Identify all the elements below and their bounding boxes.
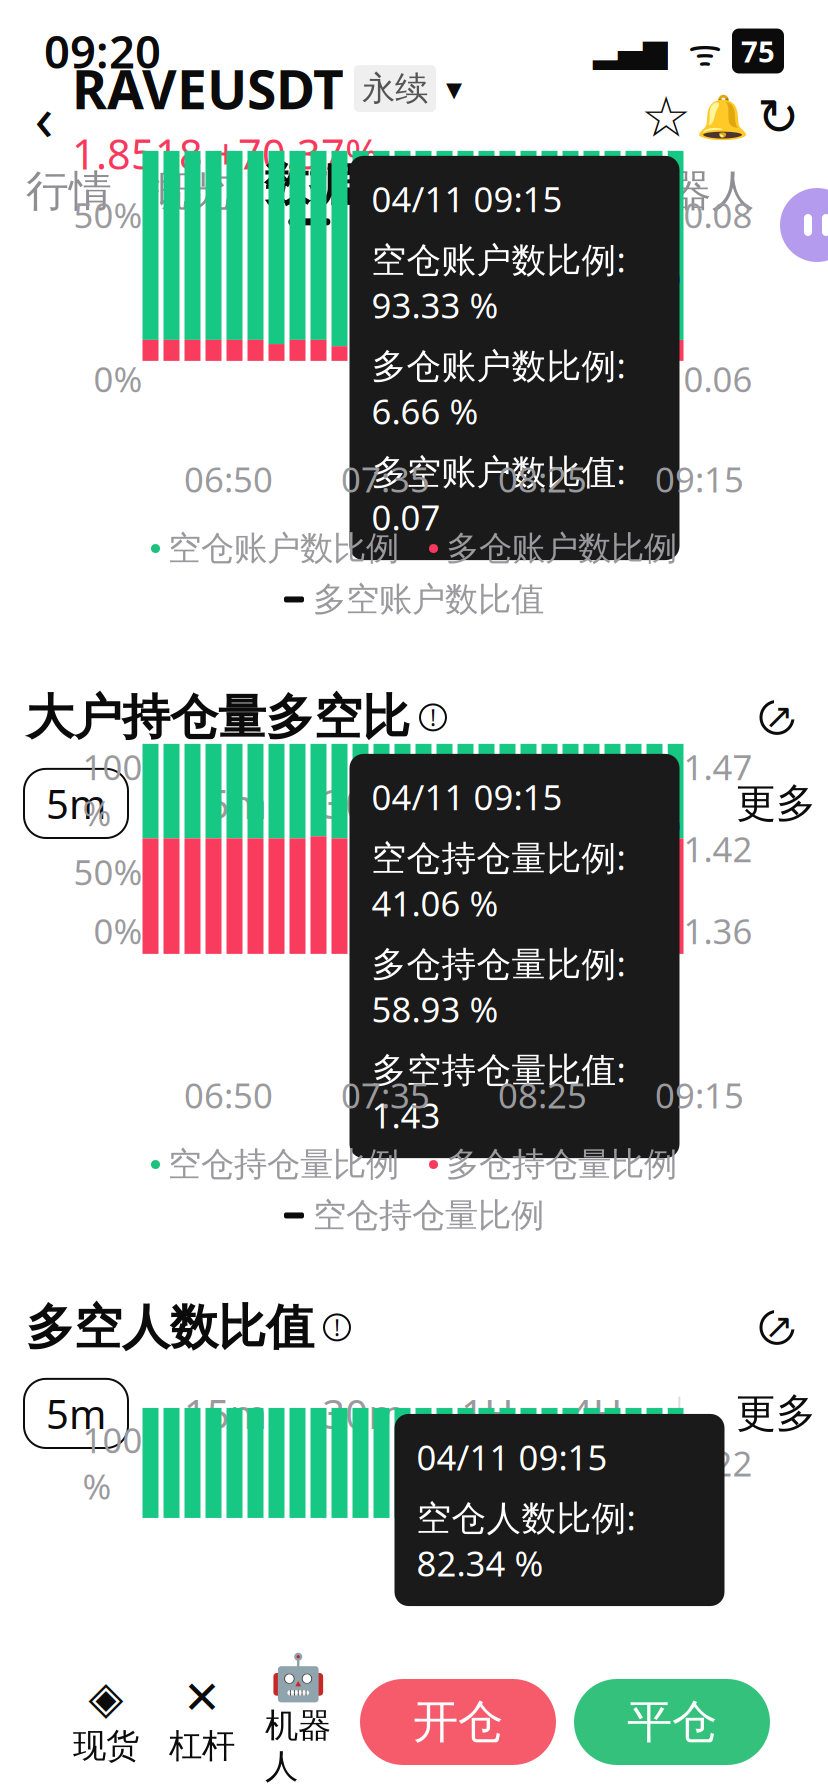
- staticText: 多仓账户数比例: [446, 528, 677, 569]
- button[interactable]: 广场: [387, 165, 473, 217]
- staticText: !: [430, 702, 436, 732]
- button[interactable]: 5m: [24, 769, 128, 838]
- staticText: 数据: [264, 157, 354, 212]
- staticText: 30m: [322, 1387, 405, 1440]
- button[interactable]: 1H: [461, 1387, 514, 1440]
- staticText: 04/11 09:15: [371, 774, 562, 820]
- staticText: ◈: [88, 1672, 123, 1723]
- staticText: 07:35: [341, 1072, 430, 1118]
- staticText: 0%: [93, 356, 142, 402]
- staticText: 07:35: [341, 456, 430, 502]
- staticText: 1.42: [683, 826, 752, 872]
- staticText: 机器人: [265, 1705, 331, 1787]
- button[interactable]: ✕: [154, 1677, 250, 1766]
- staticText: 永续: [362, 68, 428, 109]
- staticText: !: [334, 1312, 340, 1342]
- staticText: 更多: [736, 1389, 816, 1438]
- staticText: 机器人: [626, 165, 755, 217]
- staticText: 多空账户数比值: [313, 579, 544, 620]
- staticText: 75: [741, 31, 775, 70]
- staticText: 更多: [736, 779, 816, 828]
- staticText: ↗: [764, 1306, 793, 1345]
- button[interactable]: Share: [750, 89, 806, 145]
- staticText: 多仓持仓量比例: 58.93 %: [371, 940, 625, 1032]
- staticText: 06:50: [184, 456, 273, 502]
- button[interactable]: 数据: [264, 157, 354, 225]
- button[interactable]: 🤖: [250, 1657, 346, 1787]
- staticText: 30m: [322, 777, 405, 830]
- staticText: 09:20: [44, 21, 161, 81]
- staticText: 100%: [82, 1417, 142, 1509]
- staticText: RAVEUSDT: [72, 53, 344, 124]
- staticText: 04/11 09:15: [371, 176, 562, 222]
- staticText: ✕: [183, 1672, 221, 1723]
- staticText: 5m: [46, 1387, 106, 1440]
- staticText: 现货: [73, 1725, 139, 1766]
- staticText: 行情: [26, 165, 112, 217]
- staticText: 5m: [46, 777, 106, 830]
- staticText: ‹: [34, 76, 53, 158]
- staticText: 概览: [145, 165, 231, 217]
- staticText: 跟单: [507, 165, 593, 217]
- staticText: 空仓人数比例: 82.34 %: [416, 1494, 635, 1586]
- button[interactable]: Favorite: [638, 89, 694, 145]
- button[interactable]: 概览: [145, 165, 231, 217]
- staticText: ▂▄▆: [593, 33, 668, 69]
- staticText: 1.8518 +70.37%: [72, 126, 379, 181]
- staticText: ↻: [757, 88, 799, 146]
- staticText: 1H: [461, 1387, 514, 1440]
- staticText: 空仓持仓量比例: 41.06 %: [371, 834, 625, 926]
- staticText: 开仓: [413, 1694, 503, 1750]
- staticText: 0.08: [683, 192, 752, 238]
- staticText: 多空人数比值: [26, 1298, 314, 1357]
- staticText: 4H: [570, 1387, 623, 1440]
- button[interactable]: ◈: [58, 1677, 154, 1766]
- button[interactable]: 5m: [24, 1379, 128, 1448]
- button[interactable]: 4H: [570, 1387, 623, 1440]
- staticText: 0.22: [683, 1440, 752, 1486]
- button[interactable]: 1H: [461, 777, 514, 830]
- staticText: 08:25: [498, 1072, 587, 1118]
- staticText: 多仓账户数比例: 6.66 %: [371, 342, 625, 434]
- staticText: 空仓账户数比例: 93.33 %: [371, 236, 625, 328]
- staticText: 08:25: [498, 456, 587, 502]
- staticText: 空仓账户数比例: [168, 528, 399, 569]
- button[interactable]: 30m: [322, 777, 405, 830]
- staticText: 06:50: [184, 1072, 273, 1118]
- staticText: 多空账户数比值: 0.07: [371, 448, 625, 540]
- staticText: 04/11 09:15: [416, 1434, 607, 1480]
- staticText: 15m: [184, 1387, 267, 1440]
- button[interactable]: 15m: [184, 777, 267, 830]
- staticText: 🤖: [270, 1651, 326, 1703]
- button[interactable]: 30m: [322, 1387, 405, 1440]
- button[interactable]: 15m: [184, 1387, 267, 1440]
- button[interactable]: 跟单: [507, 165, 593, 217]
- staticText: 大户持仓量多空比: [26, 688, 410, 747]
- staticText: 多空持仓量比值: 1.43: [371, 1046, 625, 1138]
- button[interactable]: 更多: [736, 1389, 816, 1438]
- staticText: 09:15: [655, 1072, 744, 1118]
- staticText: 15m: [184, 777, 267, 830]
- button[interactable]: 平仓: [574, 1679, 770, 1765]
- button[interactable]: Floating assistant: [780, 188, 828, 262]
- staticText: ᯤ: [668, 26, 732, 76]
- staticText: 广场: [387, 165, 473, 217]
- staticText: 空仓持仓量比例: [168, 1144, 399, 1185]
- button[interactable]: Alerts: [694, 89, 750, 145]
- staticText: 09:15: [655, 456, 744, 502]
- staticText: 1.47: [683, 744, 752, 790]
- button[interactable]: Share: [752, 1302, 802, 1352]
- button[interactable]: 行情: [26, 165, 112, 217]
- staticText: ↗: [764, 696, 793, 735]
- staticText: 50%: [73, 192, 142, 238]
- button[interactable]: Back: [22, 87, 66, 147]
- staticText: 50%: [73, 849, 142, 895]
- button[interactable]: Share: [752, 692, 802, 742]
- staticText: 0.06: [683, 356, 752, 402]
- staticText: 🔔: [695, 93, 748, 141]
- button[interactable]: 更多: [736, 779, 816, 828]
- button[interactable]: 开仓: [360, 1679, 556, 1765]
- button[interactable]: 机器人: [626, 165, 755, 217]
